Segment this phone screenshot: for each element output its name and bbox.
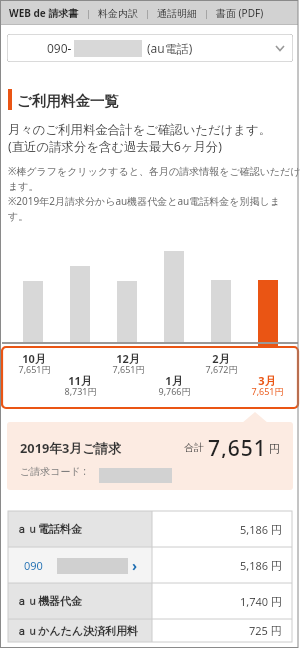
- staticText: WEB de 請求書: [9, 6, 79, 20]
- staticText: 7,651円: [18, 363, 51, 375]
- staticText: 725 円: [249, 623, 282, 638]
- staticText: 7,651円: [112, 363, 145, 375]
- staticText: 2月: [212, 351, 230, 366]
- staticText: 月々のご利用料金合計をご確認いただけます。: [8, 122, 272, 138]
- staticText: 7,651: [208, 434, 267, 458]
- staticText: 1月: [165, 373, 183, 388]
- staticText: 円: [269, 442, 280, 456]
- staticText: 090-: [47, 40, 72, 56]
- button[interactable]: ａｕ機器代金: [8, 583, 292, 619]
- staticText: 11月: [68, 373, 92, 388]
- button[interactable]: 料金内訳: [98, 1, 138, 25]
- staticText: 5,186 円: [240, 558, 282, 573]
- staticText: (直近の請求分を含む過去最大6ヶ月分): [8, 138, 222, 155]
- button[interactable]: [117, 281, 137, 343]
- staticText: 3月: [258, 373, 276, 388]
- staticText: 5,186 円: [240, 522, 282, 537]
- button[interactable]: [258, 280, 278, 348]
- button[interactable]: [70, 266, 90, 343]
- staticText: ※2019年2月請求分からau機器代金とau電話料金を別掲しま: [8, 194, 280, 208]
- staticText: 7,651円: [251, 385, 284, 397]
- staticText: ａｕ機器代金: [16, 594, 82, 608]
- staticText: ›: [132, 556, 138, 575]
- staticText: す。: [8, 210, 29, 223]
- staticText: ａｕ電話料金: [16, 522, 82, 536]
- staticText: 料金内訳: [98, 7, 138, 20]
- staticText: ｜: [143, 8, 152, 19]
- staticText: 9,766円: [158, 385, 191, 397]
- staticText: ご請求コード :: [20, 464, 86, 478]
- staticText: 書面 (PDF): [216, 6, 264, 20]
- staticText: 通話明細: [157, 7, 197, 20]
- staticText: ｜: [84, 8, 93, 19]
- staticText: ご利用料金一覧: [17, 92, 119, 110]
- staticText: 7,672円: [205, 363, 238, 375]
- staticText: 8,731円: [64, 385, 97, 397]
- staticText: 12月: [116, 351, 140, 366]
- button[interactable]: [211, 280, 231, 343]
- staticText: 2019年3月ご請求: [20, 439, 121, 456]
- staticText: (au電話): [147, 40, 193, 56]
- button[interactable]: ａｕ電話料金: [8, 511, 292, 547]
- button[interactable]: WEB de 請求書: [9, 1, 79, 25]
- button[interactable]: 書面 (PDF): [216, 1, 264, 25]
- staticText: ※棒グラフをクリックすると、各月の請求情報をご確認いただけ: [8, 164, 300, 178]
- button[interactable]: 通話明細: [157, 1, 197, 25]
- staticText: 090: [24, 558, 43, 573]
- staticText: ｜: [202, 8, 211, 19]
- staticText: ます。: [8, 180, 39, 193]
- button[interactable]: ａｕかんたん決済利用料: [8, 619, 292, 642]
- button[interactable]: [164, 251, 184, 343]
- staticText: 10月: [22, 351, 46, 366]
- button[interactable]: 090: [8, 547, 292, 583]
- staticText: 1,740 円: [240, 594, 282, 609]
- staticText: ａｕかんたん決済利用料: [16, 624, 139, 638]
- staticText: 合計: [184, 441, 204, 454]
- button[interactable]: [23, 281, 43, 343]
- button[interactable]: 090-: [7, 34, 293, 62]
